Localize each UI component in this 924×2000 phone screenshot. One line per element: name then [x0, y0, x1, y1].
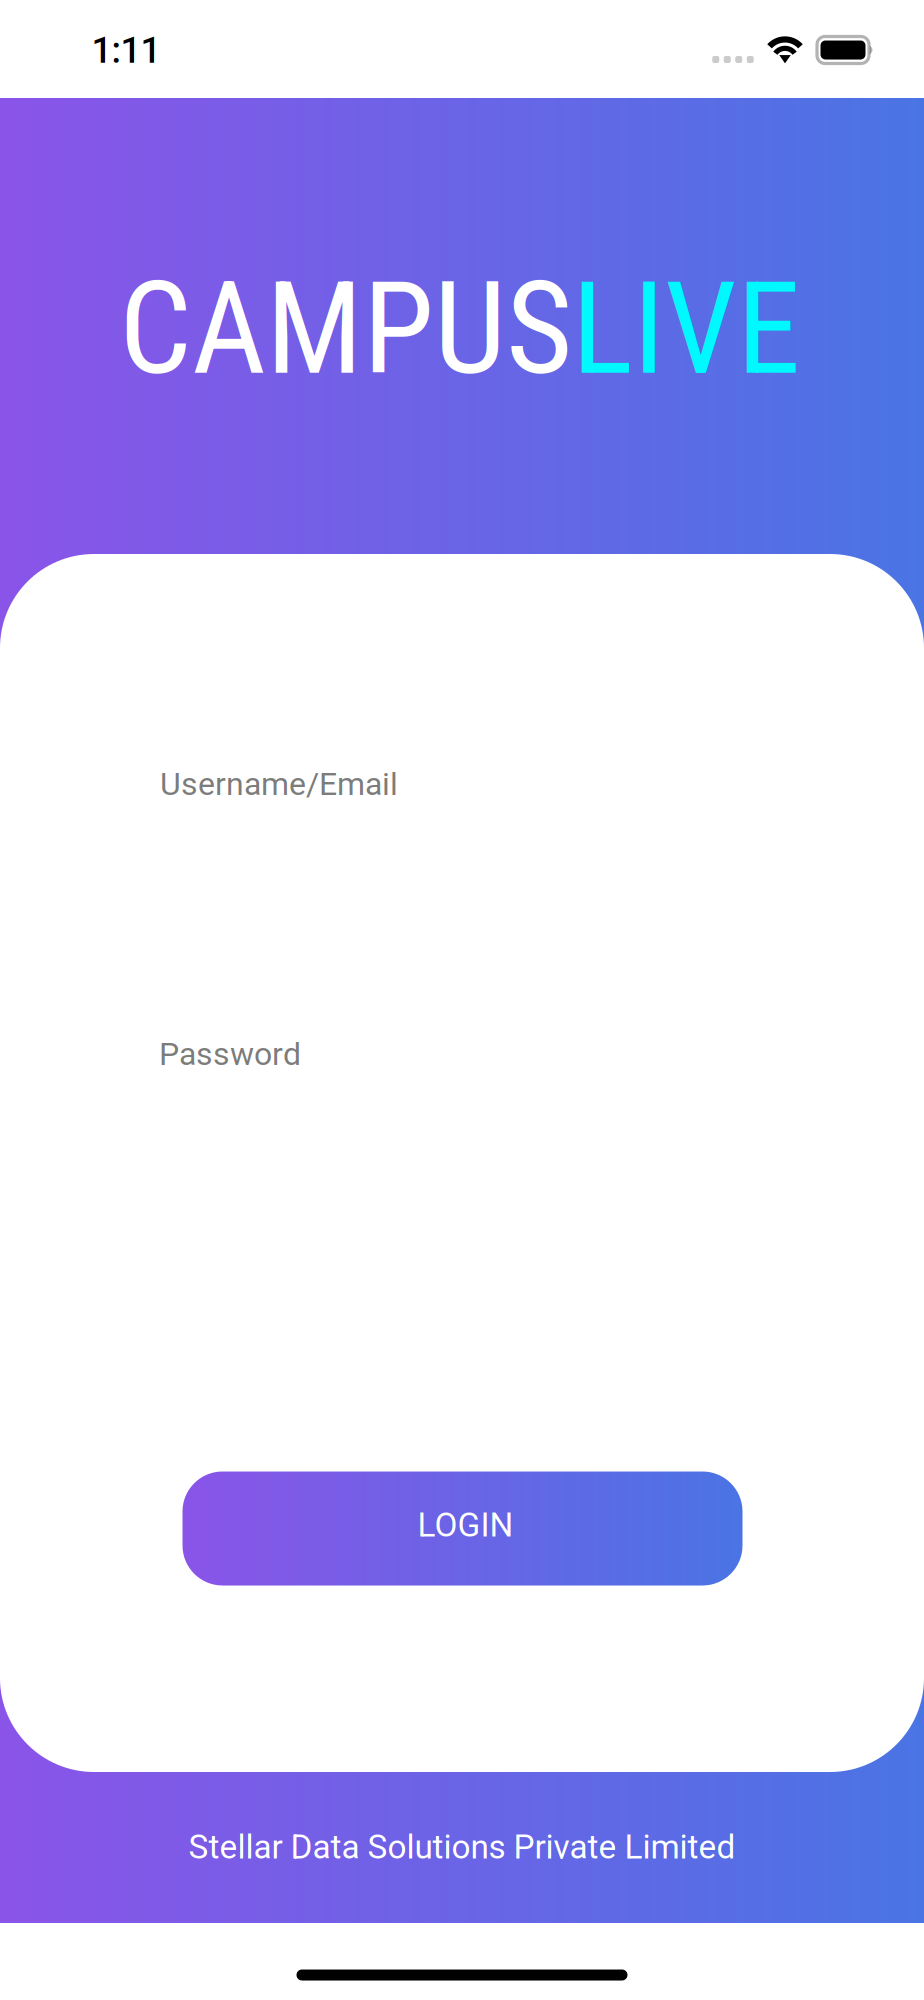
button[interactable]: LOGIN — [182, 1471, 742, 1585]
staticText: 1:11 — [91, 29, 160, 72]
staticText: Password — [159, 1035, 301, 1073]
staticText: LIVE — [572, 254, 801, 404]
staticText: Username/Email — [160, 765, 398, 803]
staticText: LOGIN — [417, 1505, 513, 1545]
staticText: Stellar Data Solutions Private Limited — [188, 1827, 735, 1867]
staticText: CAMPUS — [119, 254, 572, 404]
